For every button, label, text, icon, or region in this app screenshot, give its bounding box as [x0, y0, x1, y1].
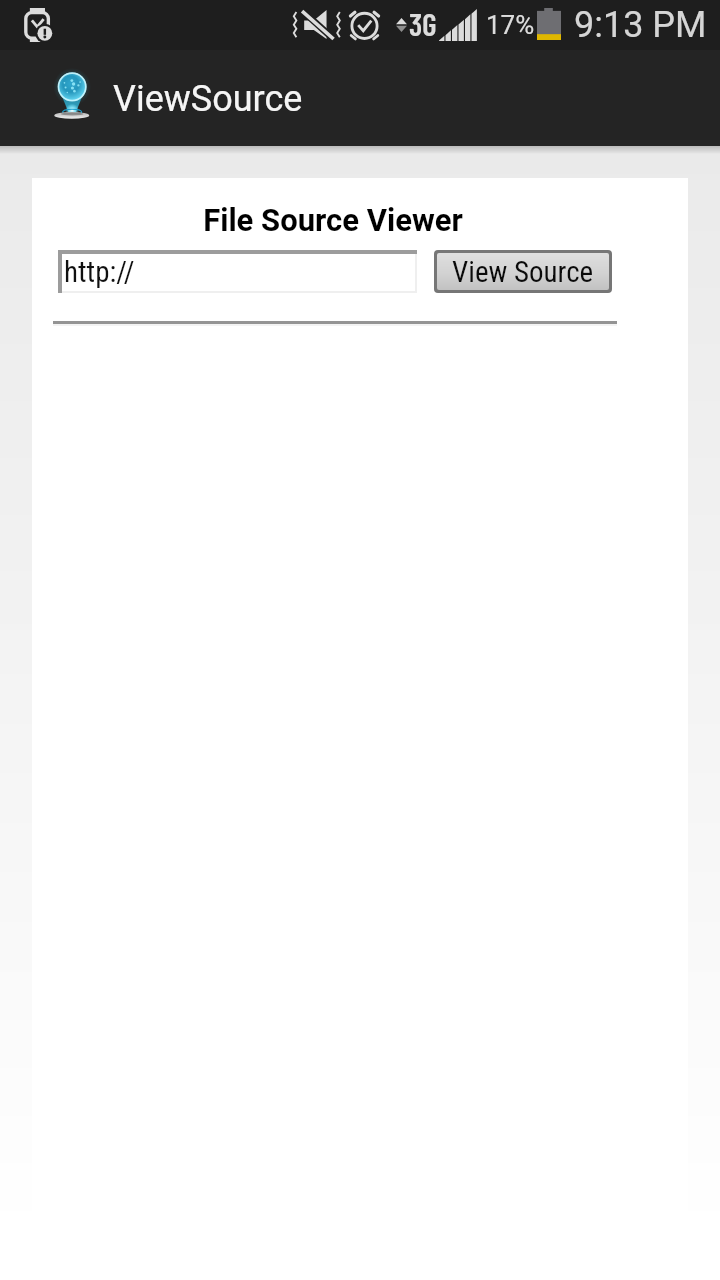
- other: Data transfer: [396, 18, 407, 32]
- other: Battery 17 percent: [537, 8, 561, 40]
- staticText: File Source Viewer: [51, 202, 615, 238]
- staticText: http://: [64, 255, 135, 289]
- staticText: 3G: [409, 5, 437, 42]
- staticText: ViewSource: [113, 78, 303, 120]
- other: App icon: [52, 71, 90, 123]
- button[interactable]: http://: [58, 250, 417, 293]
- other: Silent mode, vibrate: [293, 10, 345, 39]
- other: Signal strength: [439, 9, 478, 41]
- staticText: 9:13 PM: [574, 4, 707, 46]
- staticText: 17%: [486, 10, 535, 40]
- button[interactable]: View Source: [437, 253, 609, 290]
- other: Alarm set: [351, 10, 378, 40]
- other: Wearable notification: [25, 8, 52, 42]
- button[interactable]: App icon: [0, 50, 720, 146]
- staticText: View Source: [452, 255, 594, 289]
